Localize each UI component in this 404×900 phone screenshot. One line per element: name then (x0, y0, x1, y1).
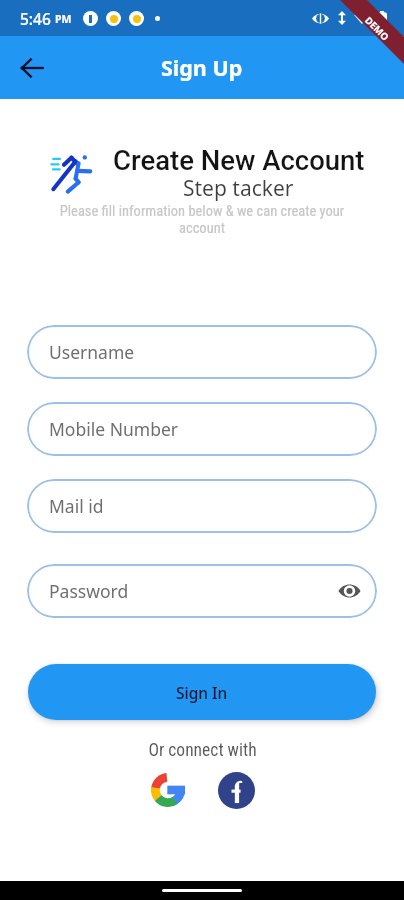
staticText: Sign Up (161, 53, 243, 82)
button[interactable]: Password (27, 564, 377, 618)
staticText: Username (49, 340, 135, 364)
button[interactable]: Sign In (28, 664, 376, 720)
button[interactable]: Show password (335, 577, 363, 605)
button[interactable]: Sign in with Google (146, 768, 190, 812)
staticText: Mail id (49, 494, 104, 518)
staticText: Step tacker (183, 174, 294, 203)
staticText: PM (55, 12, 72, 26)
button[interactable]: Mobile Number (27, 402, 377, 456)
button[interactable]: Back (14, 50, 50, 86)
button[interactable]: Username (27, 325, 377, 379)
staticText: DEMO (362, 14, 392, 44)
staticText: Mobile Number (49, 417, 179, 441)
staticText: Password (49, 579, 129, 603)
staticText: Please fill information below & we can c… (48, 203, 356, 237)
staticText: Or connect with (148, 740, 257, 761)
button[interactable]: Sign in with Facebook (214, 768, 258, 812)
button[interactable]: Mail id (27, 479, 377, 533)
staticText: Sign In (176, 682, 228, 703)
staticText: 5:46 (20, 8, 51, 29)
staticText: Create New Account (113, 144, 365, 176)
